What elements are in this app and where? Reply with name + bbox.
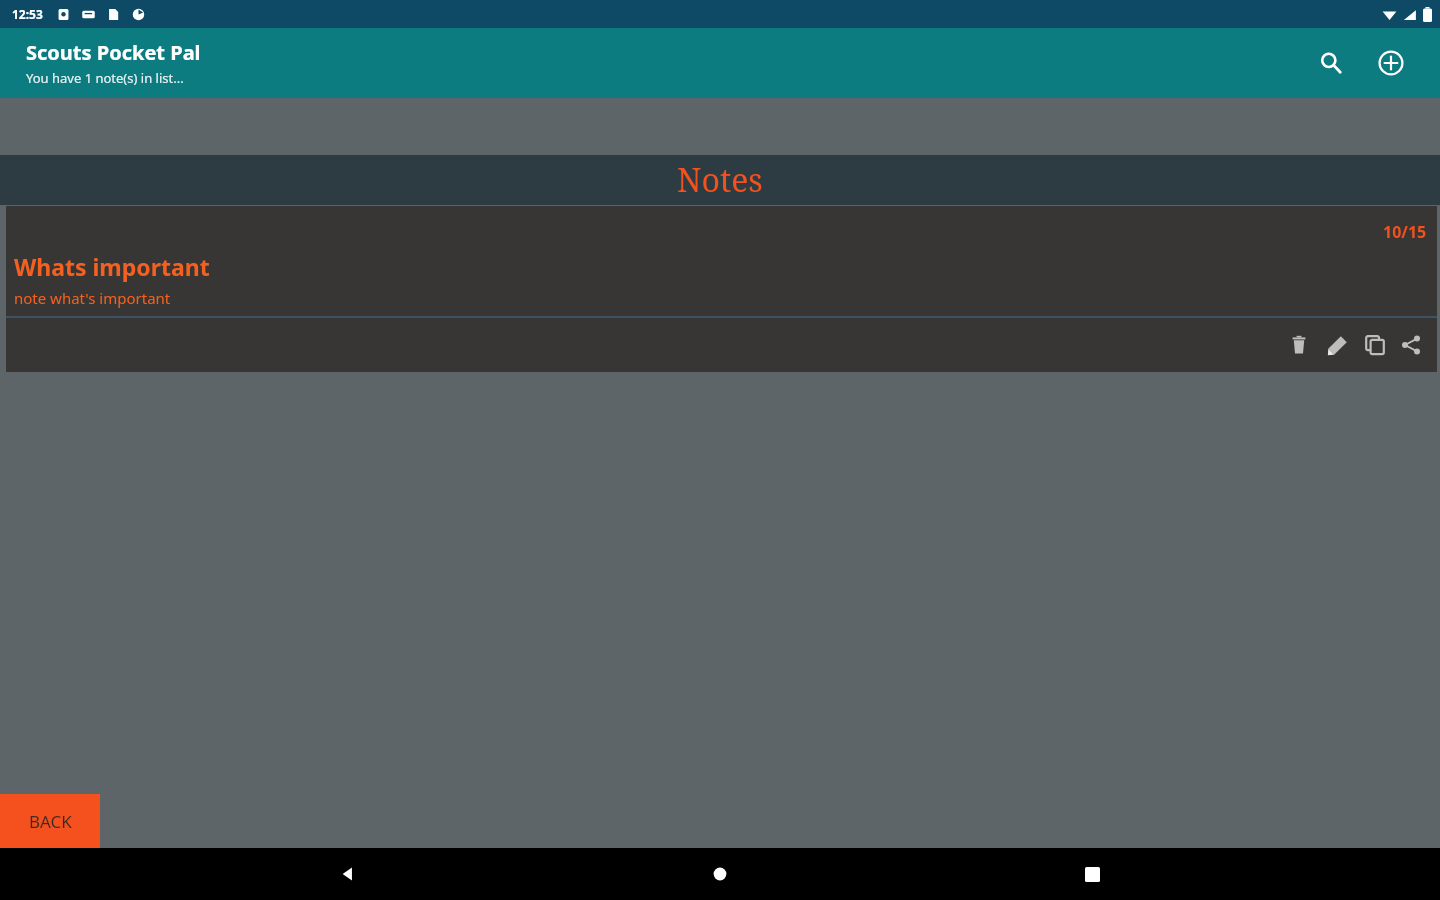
button[interactable]: Delete [1283, 329, 1315, 361]
button[interactable]: Share [1395, 329, 1427, 361]
staticText: Scouts Pocket Pal [26, 39, 201, 66]
button[interactable]: Recents [1068, 850, 1116, 898]
button[interactable]: Edit [1321, 329, 1353, 361]
staticText: Whats important [14, 251, 210, 282]
staticText: 10/15 [1383, 221, 1427, 243]
button[interactable]: Search [1308, 40, 1354, 86]
button[interactable]: Home [696, 850, 744, 898]
staticText: note what's important [14, 288, 171, 308]
staticText: You have 1 note(s) in list... [26, 69, 184, 87]
button[interactable]: 10/15 [6, 206, 1437, 372]
staticText: 12:53 [12, 6, 43, 22]
button[interactable]: Copy [1359, 329, 1391, 361]
staticText: Notes [677, 158, 763, 202]
button[interactable]: BACK [0, 794, 100, 848]
button[interactable]: Add note [1368, 40, 1414, 86]
button[interactable]: Back [324, 850, 372, 898]
staticText: BACK [29, 810, 72, 833]
